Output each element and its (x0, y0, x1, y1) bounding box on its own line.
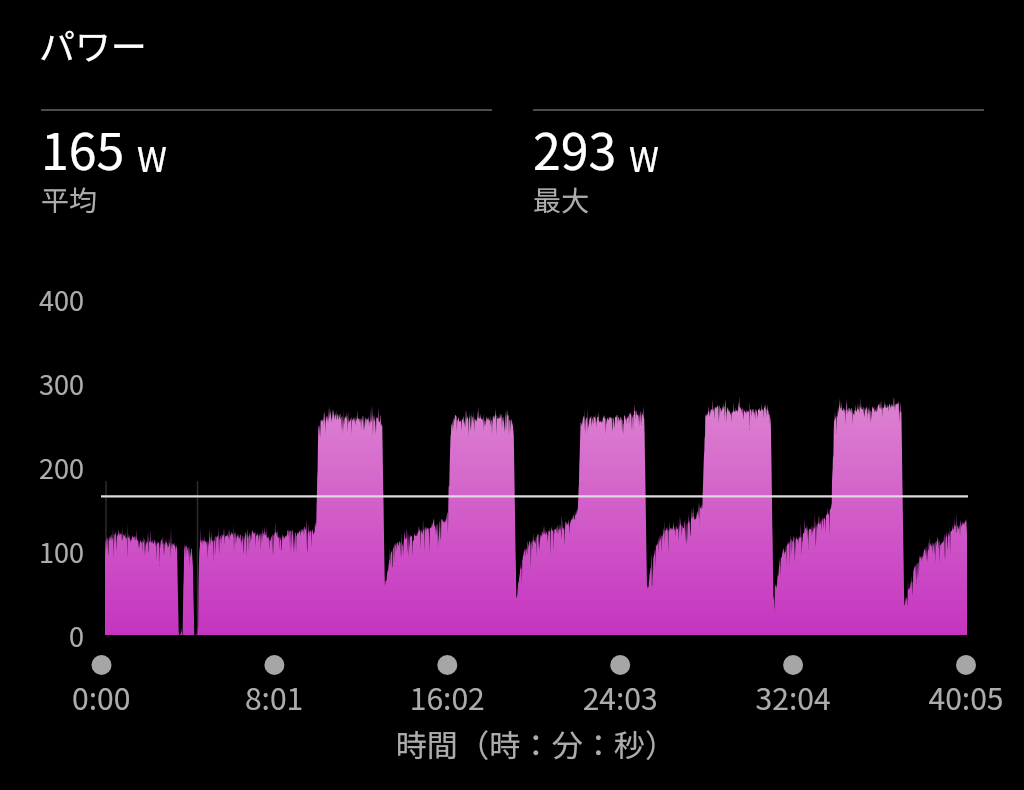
staticText: W (137, 133, 167, 182)
staticText: パワー (39, 18, 148, 70)
staticText: 293 (533, 112, 617, 184)
button[interactable]: 293 (533, 109, 984, 224)
staticText: 最大 (533, 179, 590, 220)
button[interactable]: パワーのグラフ (0, 0, 1024, 790)
staticText: W (629, 133, 659, 182)
staticText: 165 (41, 112, 125, 184)
staticText: 平均 (41, 179, 98, 220)
button[interactable]: 165 (41, 109, 492, 224)
